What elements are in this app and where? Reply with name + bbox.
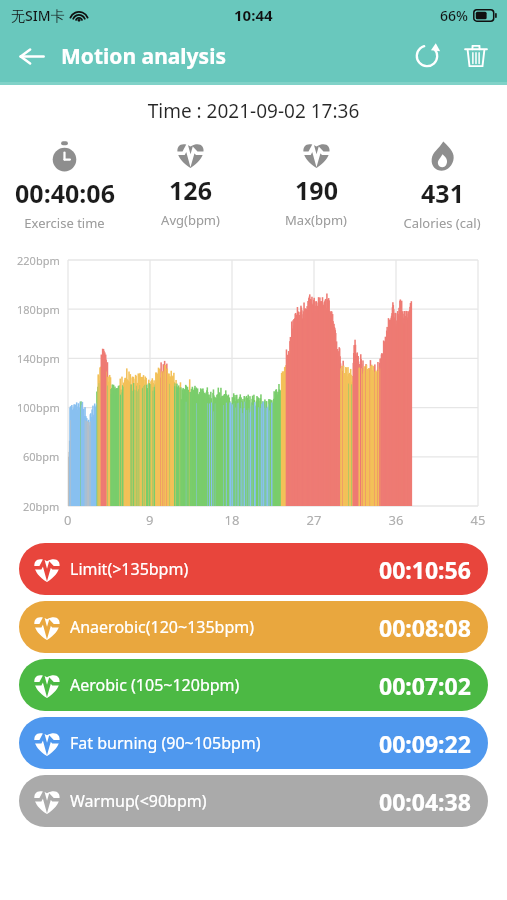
staticText: Anaerobic(120~135bpm) bbox=[70, 616, 255, 638]
staticText: Time : 2021-09-02 17:36 bbox=[0, 98, 507, 124]
staticText: Limit(>135bpm) bbox=[70, 558, 189, 580]
staticText: 431 bbox=[421, 176, 464, 210]
staticText: 00:40:06 bbox=[15, 176, 115, 210]
staticText: Aerobic (105~120bpm) bbox=[70, 674, 240, 696]
button[interactable]: Refresh bbox=[409, 38, 445, 74]
button[interactable]: Fat burning (90~105bpm) bbox=[19, 717, 488, 769]
button[interactable]: Limit(>135bpm) bbox=[19, 543, 488, 595]
staticText: 190 bbox=[295, 173, 338, 207]
staticText: Max(bpm) bbox=[285, 211, 347, 229]
button[interactable]: Aerobic (105~120bpm) bbox=[19, 659, 488, 711]
staticText: Motion analysis bbox=[61, 42, 226, 71]
staticText: 00:07:02 bbox=[379, 670, 471, 701]
staticText: 00:09:22 bbox=[379, 728, 471, 759]
staticText: Fat burning (90~105bpm) bbox=[70, 732, 261, 754]
button[interactable]: Anaerobic(120~135bpm) bbox=[19, 601, 488, 653]
staticText: 00:10:56 bbox=[379, 554, 471, 585]
button[interactable]: Back bbox=[13, 38, 50, 75]
staticText: Avg(bpm) bbox=[161, 211, 220, 229]
staticText: 10:44 bbox=[234, 5, 273, 25]
staticText: 00:08:08 bbox=[379, 612, 471, 643]
staticText: 00:04:38 bbox=[379, 786, 471, 817]
staticText: 66% bbox=[440, 6, 468, 25]
staticText: 无SIM卡 bbox=[11, 6, 65, 25]
staticText: Warmup(<90bpm) bbox=[70, 790, 207, 812]
staticText: Calories (cal) bbox=[403, 214, 481, 232]
staticText: 126 bbox=[169, 173, 212, 207]
staticText: Exercise time bbox=[24, 214, 105, 232]
button[interactable]: Delete bbox=[458, 38, 494, 74]
button[interactable]: Warmup(<90bpm) bbox=[19, 775, 488, 827]
